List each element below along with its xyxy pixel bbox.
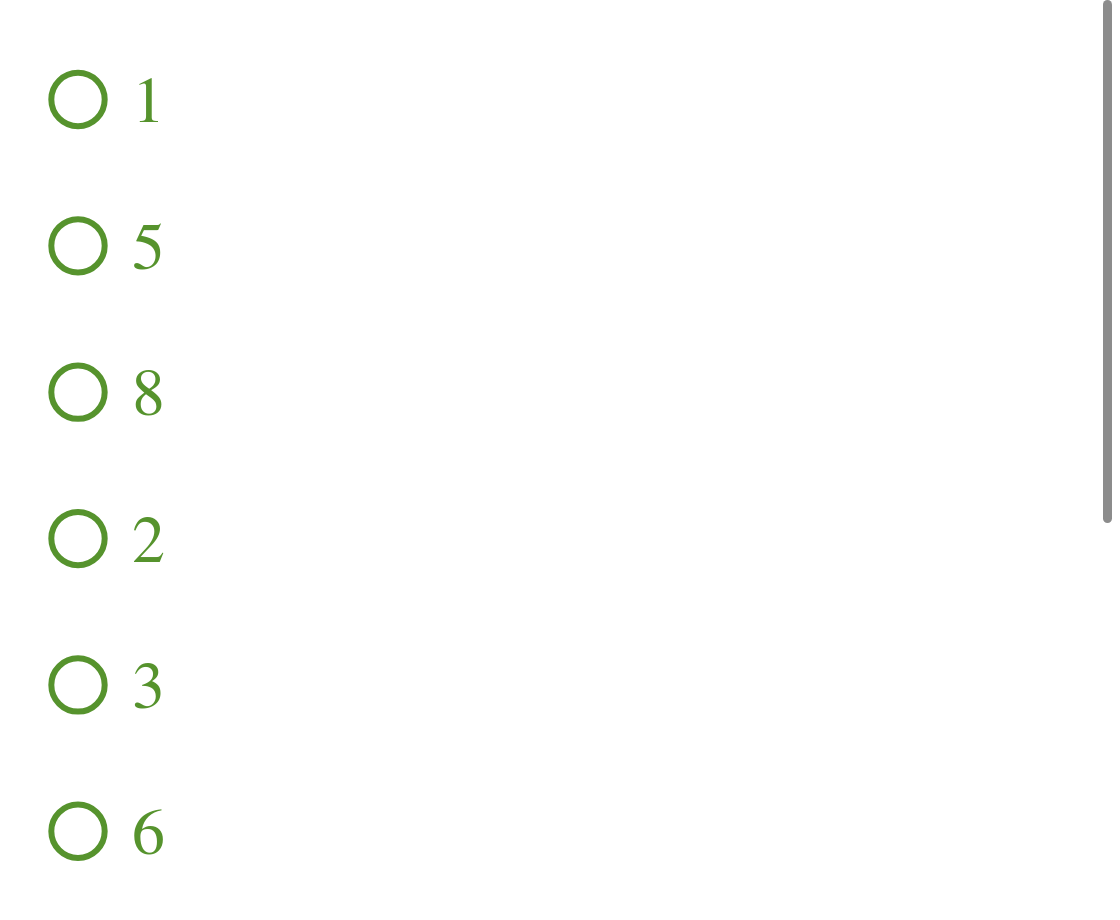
button[interactable]: 3 — [0, 612, 1120, 758]
staticText: 2 — [132, 509, 165, 575]
button[interactable]: 5 — [0, 173, 1120, 319]
other: Scrollbar — [1103, 0, 1112, 523]
staticText: 5 — [132, 216, 165, 282]
button[interactable]: 2 — [0, 466, 1120, 612]
staticText: 3 — [132, 655, 165, 721]
staticText: 1 — [132, 69, 165, 135]
button[interactable]: 8 — [0, 319, 1120, 465]
staticText: 8 — [132, 362, 165, 428]
button[interactable]: 6 — [0, 758, 1120, 904]
button[interactable]: 1 — [0, 26, 1120, 172]
staticText: 6 — [132, 801, 165, 867]
